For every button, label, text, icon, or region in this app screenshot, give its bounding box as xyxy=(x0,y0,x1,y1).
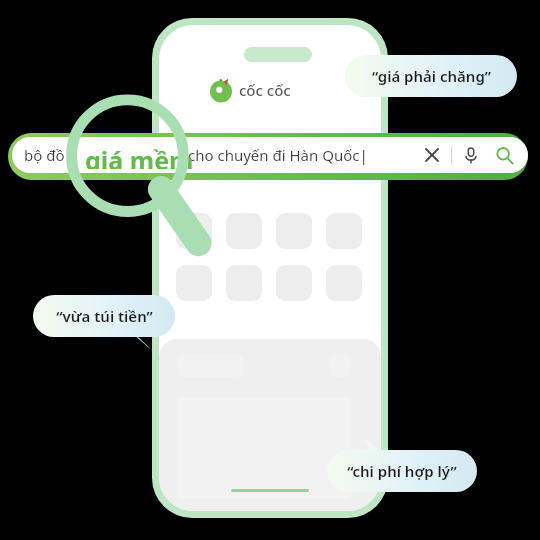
button[interactable]: bộ đồ xyxy=(12,137,528,173)
staticText: cho chuyến đi Hàn Quốc| xyxy=(188,145,368,165)
button[interactable]: “giá phải chăng” xyxy=(345,55,517,97)
staticText: “giá phải chăng” xyxy=(372,66,491,86)
button[interactable] xyxy=(176,213,212,249)
button[interactable]: Search xyxy=(490,141,518,169)
button[interactable] xyxy=(226,265,262,301)
button[interactable] xyxy=(176,265,212,301)
staticText: “vừa túi tiền” xyxy=(56,306,153,326)
button[interactable]: “vừa túi tiền” xyxy=(33,295,175,337)
button[interactable] xyxy=(326,265,362,301)
button[interactable]: Clear xyxy=(419,142,445,168)
button[interactable] xyxy=(226,213,262,249)
button[interactable]: “chi phí hợp lý” xyxy=(327,450,477,492)
staticText: cốc cốc xyxy=(239,80,291,100)
staticText: giá mềm xyxy=(85,143,194,169)
button[interactable] xyxy=(276,213,312,249)
button[interactable] xyxy=(276,265,312,301)
button[interactable] xyxy=(326,213,362,249)
staticText: “chi phí hợp lý” xyxy=(347,461,457,481)
staticText: bộ đồ xyxy=(24,145,65,165)
button[interactable]: Voice search xyxy=(458,142,484,168)
other: Magnifier xyxy=(68,88,213,253)
